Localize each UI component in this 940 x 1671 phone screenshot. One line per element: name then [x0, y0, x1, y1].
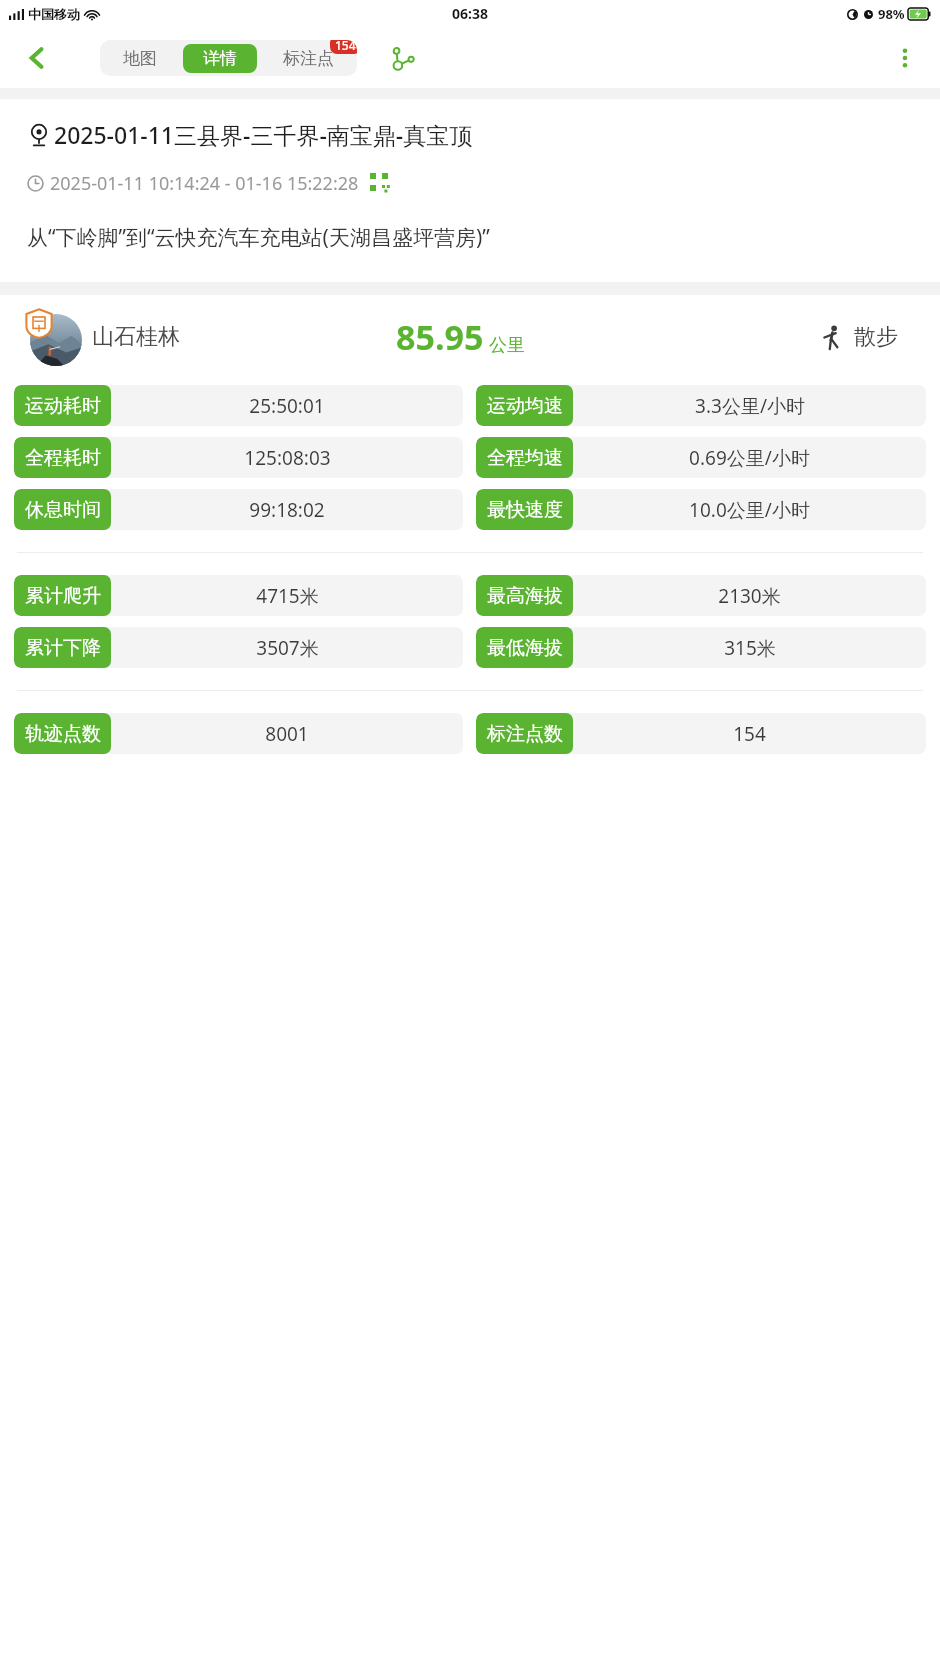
button[interactable]: 标注点数	[476, 713, 926, 754]
button[interactable]: 运动耗时	[14, 385, 463, 426]
staticText: 3.3公里/小时	[695, 393, 805, 419]
staticText: 85.95	[396, 314, 484, 360]
button[interactable]: 地图	[103, 44, 177, 73]
staticText: 10.0公里/小时	[689, 497, 810, 523]
staticText: 4715米	[256, 583, 319, 609]
staticText: 详情	[203, 48, 237, 69]
button[interactable]: 运动均速	[476, 385, 926, 426]
staticText: 山石桂林	[92, 323, 180, 351]
button[interactable]: QR code	[370, 173, 391, 194]
staticText: 地图	[123, 48, 157, 69]
staticText: 公里	[489, 334, 525, 357]
staticText: 散步	[854, 323, 898, 351]
staticText: 累计爬升	[25, 584, 101, 608]
button[interactable]: More options	[882, 35, 928, 81]
button[interactable]: 山石桂林	[24, 308, 180, 366]
staticText: 98%	[878, 5, 905, 23]
staticText: 154	[335, 40, 356, 53]
staticText: 25:50:01	[249, 393, 325, 419]
button[interactable]: 休息时间	[14, 489, 463, 530]
staticText: 中国移动	[28, 6, 80, 22]
button[interactable]: 最高海拔	[476, 575, 926, 616]
button[interactable]: 全程耗时	[14, 437, 463, 478]
button[interactable]: Back	[14, 35, 60, 81]
button[interactable]: 详情	[183, 44, 257, 73]
staticText: 315米	[724, 635, 776, 661]
staticText: 运动耗时	[25, 394, 101, 418]
button[interactable]: 轨迹点数	[14, 713, 463, 754]
staticText: 0.69公里/小时	[689, 445, 810, 471]
staticText: 3507米	[256, 635, 319, 661]
button[interactable]: 累计爬升	[14, 575, 463, 616]
button[interactable]: 最低海拔	[476, 627, 926, 668]
staticText: 休息时间	[25, 498, 101, 522]
staticText: 125:08:03	[244, 445, 331, 471]
staticText: 154	[733, 721, 766, 747]
staticText: 标注点数	[487, 722, 563, 746]
staticText: 99:18:02	[249, 497, 325, 523]
staticText: 轨迹点数	[25, 722, 101, 746]
button[interactable]: Share	[378, 34, 426, 82]
staticText: 最低海拔	[487, 636, 563, 660]
staticText: 运动均速	[487, 394, 563, 418]
staticText: 06:38	[452, 4, 488, 23]
staticText: 全程耗时	[25, 446, 101, 470]
button[interactable]: 最快速度	[476, 489, 926, 530]
button[interactable]: 全程均速	[476, 437, 926, 478]
staticText: 从“下岭脚”到“云快充汽车充电站(天湖昌盛坪营房)”	[27, 223, 490, 252]
staticText: 8001	[265, 721, 309, 747]
staticText: 标注点	[283, 48, 334, 69]
button[interactable]: 累计下降	[14, 627, 463, 668]
staticText: 全程均速	[487, 446, 563, 470]
staticText: 最快速度	[487, 498, 563, 522]
button[interactable]: 标注点	[263, 44, 354, 73]
staticText: 2130米	[718, 583, 781, 609]
staticText: 2025-01-11三县界-三千界-南宝鼎-真宝顶	[54, 119, 473, 150]
staticText: 累计下降	[25, 636, 101, 660]
staticText: 最高海拔	[487, 584, 563, 608]
staticText: 2025-01-11 10:14:24 - 01-16 15:22:28	[50, 171, 359, 196]
